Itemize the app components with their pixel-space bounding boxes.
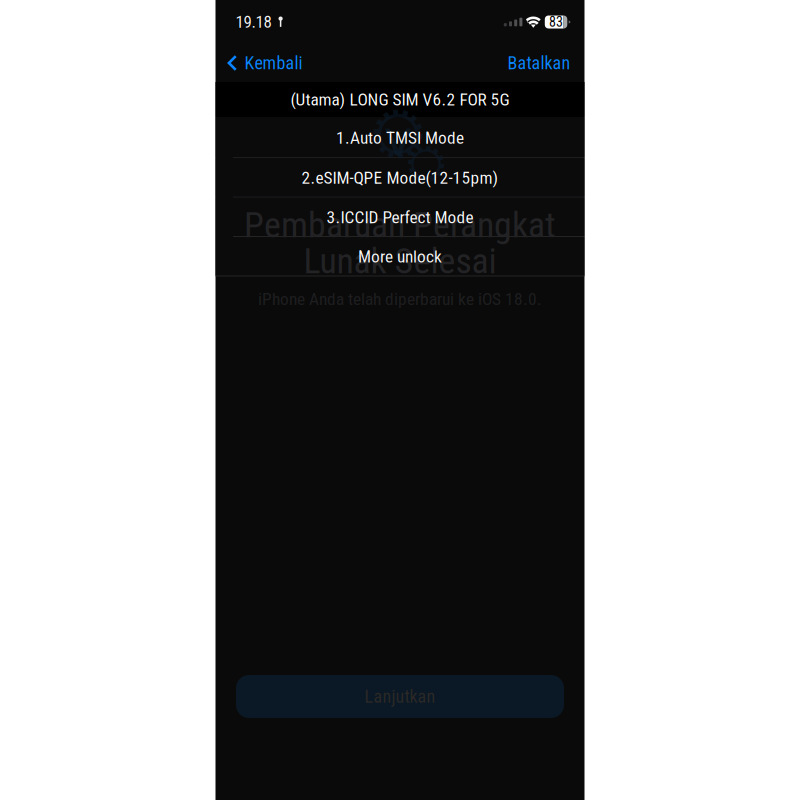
button[interactable]: Kembali: [215, 44, 302, 82]
button[interactable]: (Utama) LONG SIM V6.2 FOR 5G: [215, 82, 584, 117]
staticText: 19.18: [235, 12, 271, 32]
staticText: 83: [549, 14, 563, 30]
staticText: 2.eSIM-QPE Mode(12-15pm): [301, 168, 498, 188]
staticText: 1.Auto TMSI Mode: [336, 128, 464, 148]
staticText: Batalkan: [507, 52, 570, 74]
staticText: More unlock: [358, 246, 442, 267]
button[interactable]: 2.eSIM-QPE Mode(12-15pm): [215, 158, 584, 198]
staticText: Lanjutkan: [364, 686, 435, 707]
button[interactable]: Batalkan: [507, 44, 584, 82]
staticText: Kembali: [244, 52, 302, 74]
button[interactable]: 1.Auto TMSI Mode: [215, 117, 584, 158]
staticText: 3.ICCID Perfect Mode: [326, 207, 473, 227]
button[interactable]: 3.ICCID Perfect Mode: [215, 198, 584, 237]
staticText: Pembaruan Perangkat: [244, 204, 556, 246]
staticText: Lunak Selesai: [303, 240, 496, 282]
button[interactable]: Lanjutkan: [236, 675, 564, 718]
staticText: iPhone Anda telah diperbarui ke iOS 18.0…: [258, 289, 542, 309]
button[interactable]: More unlock: [215, 237, 584, 276]
staticText: (Utama) LONG SIM V6.2 FOR 5G: [290, 89, 509, 110]
